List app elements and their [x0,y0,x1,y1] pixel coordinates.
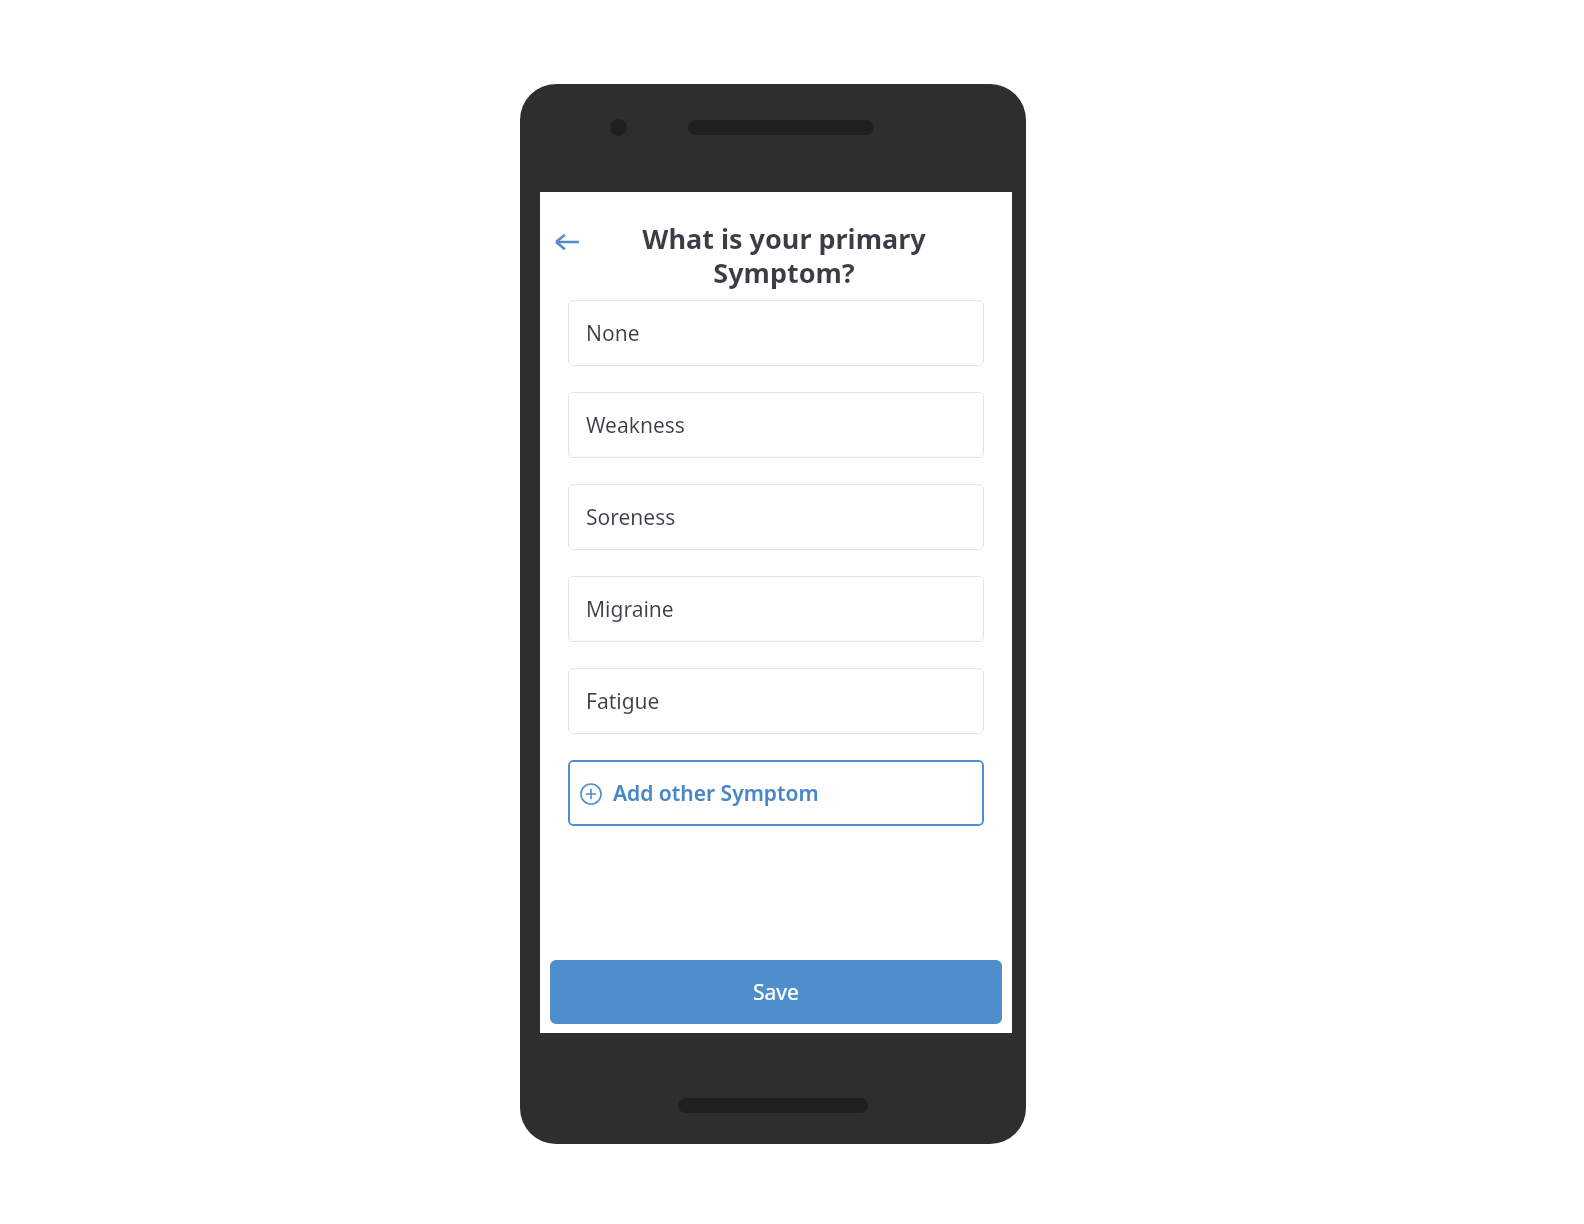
button[interactable]: Add other Symptom [568,760,984,826]
button[interactable]: Fatigue [568,668,984,734]
button[interactable]: Save [550,960,1002,1024]
staticText: None [586,319,640,348]
staticText: Migraine [586,595,674,624]
staticText: Soreness [586,503,676,532]
button[interactable]: Weakness [568,392,984,458]
staticText: Fatigue [586,687,660,716]
button[interactable]: Soreness [568,484,984,550]
staticText: Weakness [586,411,685,440]
button[interactable]: Back [547,222,587,262]
staticText: What is your primary Symptom? [596,220,972,291]
staticText: Add other Symptom [613,779,819,808]
staticText: Save [753,978,799,1007]
button[interactable]: None [568,300,984,366]
button[interactable]: Migraine [568,576,984,642]
